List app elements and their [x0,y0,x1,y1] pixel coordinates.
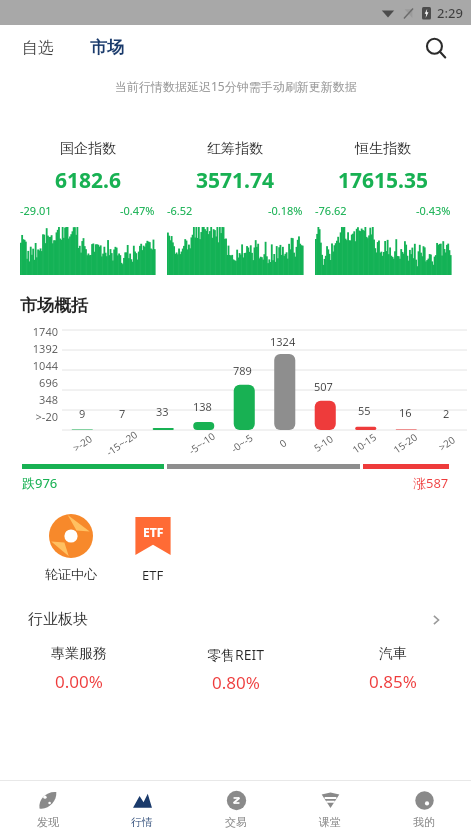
staticText: 專業服務 [51,645,107,663]
staticText: >20 [436,432,458,454]
staticText: 轮证中心 [45,566,97,582]
staticText: 9 [79,406,86,421]
staticText: 行业板块 [28,610,88,629]
button[interactable]: 行业板块 [0,606,471,633]
staticText: -15~-20 [103,427,141,459]
staticText: 33 [156,404,169,419]
button[interactable]: 自选 [18,34,58,62]
staticText: -29.01 [20,203,52,218]
other: More [429,613,443,627]
staticText: -0.43% [416,203,451,218]
staticText: 市场 [90,37,124,58]
button[interactable]: 轮证中心 [30,514,112,582]
staticText: 15-20 [390,429,420,456]
staticText: 0.85% [369,670,417,693]
button[interactable]: 课堂 [283,781,377,837]
staticText: 348 [39,392,58,407]
staticText: >-20 [35,409,58,424]
button[interactable]: 市场 [86,33,128,62]
button[interactable]: 红筹指数 [161,140,309,275]
button[interactable]: 发现 [0,781,95,837]
staticText: 3571.74 [196,166,274,195]
staticText: -76.62 [315,203,347,218]
staticText: ETF [142,566,164,584]
staticText: 10-15 [349,429,379,456]
staticText: 涨587 [413,474,449,492]
staticText: 0 [276,435,289,450]
button[interactable]: 汽車 [314,645,471,693]
staticText: 16 [399,405,412,420]
staticText: 0.80% [212,671,260,694]
staticText: 自选 [22,38,54,58]
staticText: 2 [443,406,450,421]
button[interactable]: 我的 [377,781,471,837]
staticText: 138 [193,399,212,414]
button[interactable]: 交易 [189,781,283,837]
staticText: -0.18% [268,203,303,218]
button[interactable]: 專業服務 [0,645,157,693]
staticText: 零售REIT [207,645,265,664]
staticText: 我的 [413,815,435,829]
staticText: -0.47% [120,203,155,218]
staticText: 55 [358,403,371,418]
staticText: 17615.35 [338,166,428,195]
staticText: >-20 [70,431,95,455]
staticText: 市场概括 [20,295,88,316]
staticText: 汽車 [379,645,407,663]
staticText: 1044 [32,358,58,373]
staticText: ETF [143,524,164,540]
staticText: -5~-10 [186,429,218,457]
button[interactable]: Search [419,31,453,65]
button[interactable]: ETF [112,514,194,584]
button[interactable]: 零售REIT [157,645,314,694]
staticText: 6182.6 [55,166,121,195]
staticText: 跌976 [22,474,58,492]
staticText: 国企指数 [60,140,116,158]
staticText: 行情 [131,815,153,829]
button[interactable]: 行情 [95,781,189,837]
staticText: -0~-5 [228,430,256,456]
staticText: 7 [119,406,126,421]
staticText: 1740 [32,324,58,339]
staticText: 2:29 [437,4,463,22]
button[interactable]: 恒生指数 [309,140,457,275]
staticText: 红筹指数 [207,140,263,158]
staticText: -6.52 [167,203,193,218]
staticText: 交易 [225,815,247,829]
staticText: 789 [233,363,252,378]
staticText: 507 [314,379,333,394]
staticText: 恒生指数 [355,140,411,158]
staticText: 当前行情数据延迟15分钟需手动刷新更新数据 [115,78,357,94]
staticText: 课堂 [319,815,341,829]
staticText: 1324 [270,334,296,349]
staticText: 5-10 [311,431,336,455]
staticText: 发现 [37,815,59,829]
staticText: 0.00% [55,670,103,693]
staticText: 1392 [32,341,58,356]
button[interactable]: 国企指数 [14,140,161,275]
staticText: 696 [39,375,58,390]
